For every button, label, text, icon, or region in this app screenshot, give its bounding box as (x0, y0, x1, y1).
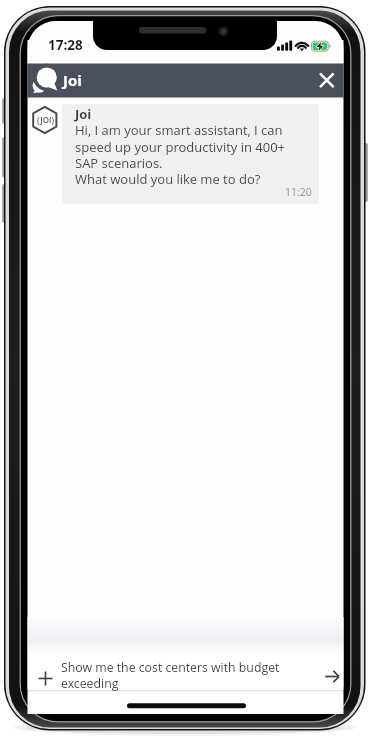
staticText: Show me the cost centers with budget (61, 659, 280, 676)
staticText: 11:20 (285, 185, 312, 199)
staticText: SAP scenarios. (75, 154, 163, 172)
staticText: speed up your productivity in 400+ (75, 138, 286, 156)
button[interactable] (313, 66, 341, 94)
button[interactable] (33, 665, 59, 691)
staticText: What would you like me to do? (75, 170, 261, 188)
staticText: Joi (63, 70, 82, 90)
staticText: Hi, I am your smart assistant, I can (75, 121, 283, 139)
staticText: Joi (75, 105, 92, 123)
staticText: exceeding (61, 675, 119, 692)
staticText: (JOI) (37, 114, 54, 125)
staticText: 17:28 (48, 36, 83, 54)
button[interactable] (57, 653, 317, 690)
button[interactable] (319, 663, 346, 690)
